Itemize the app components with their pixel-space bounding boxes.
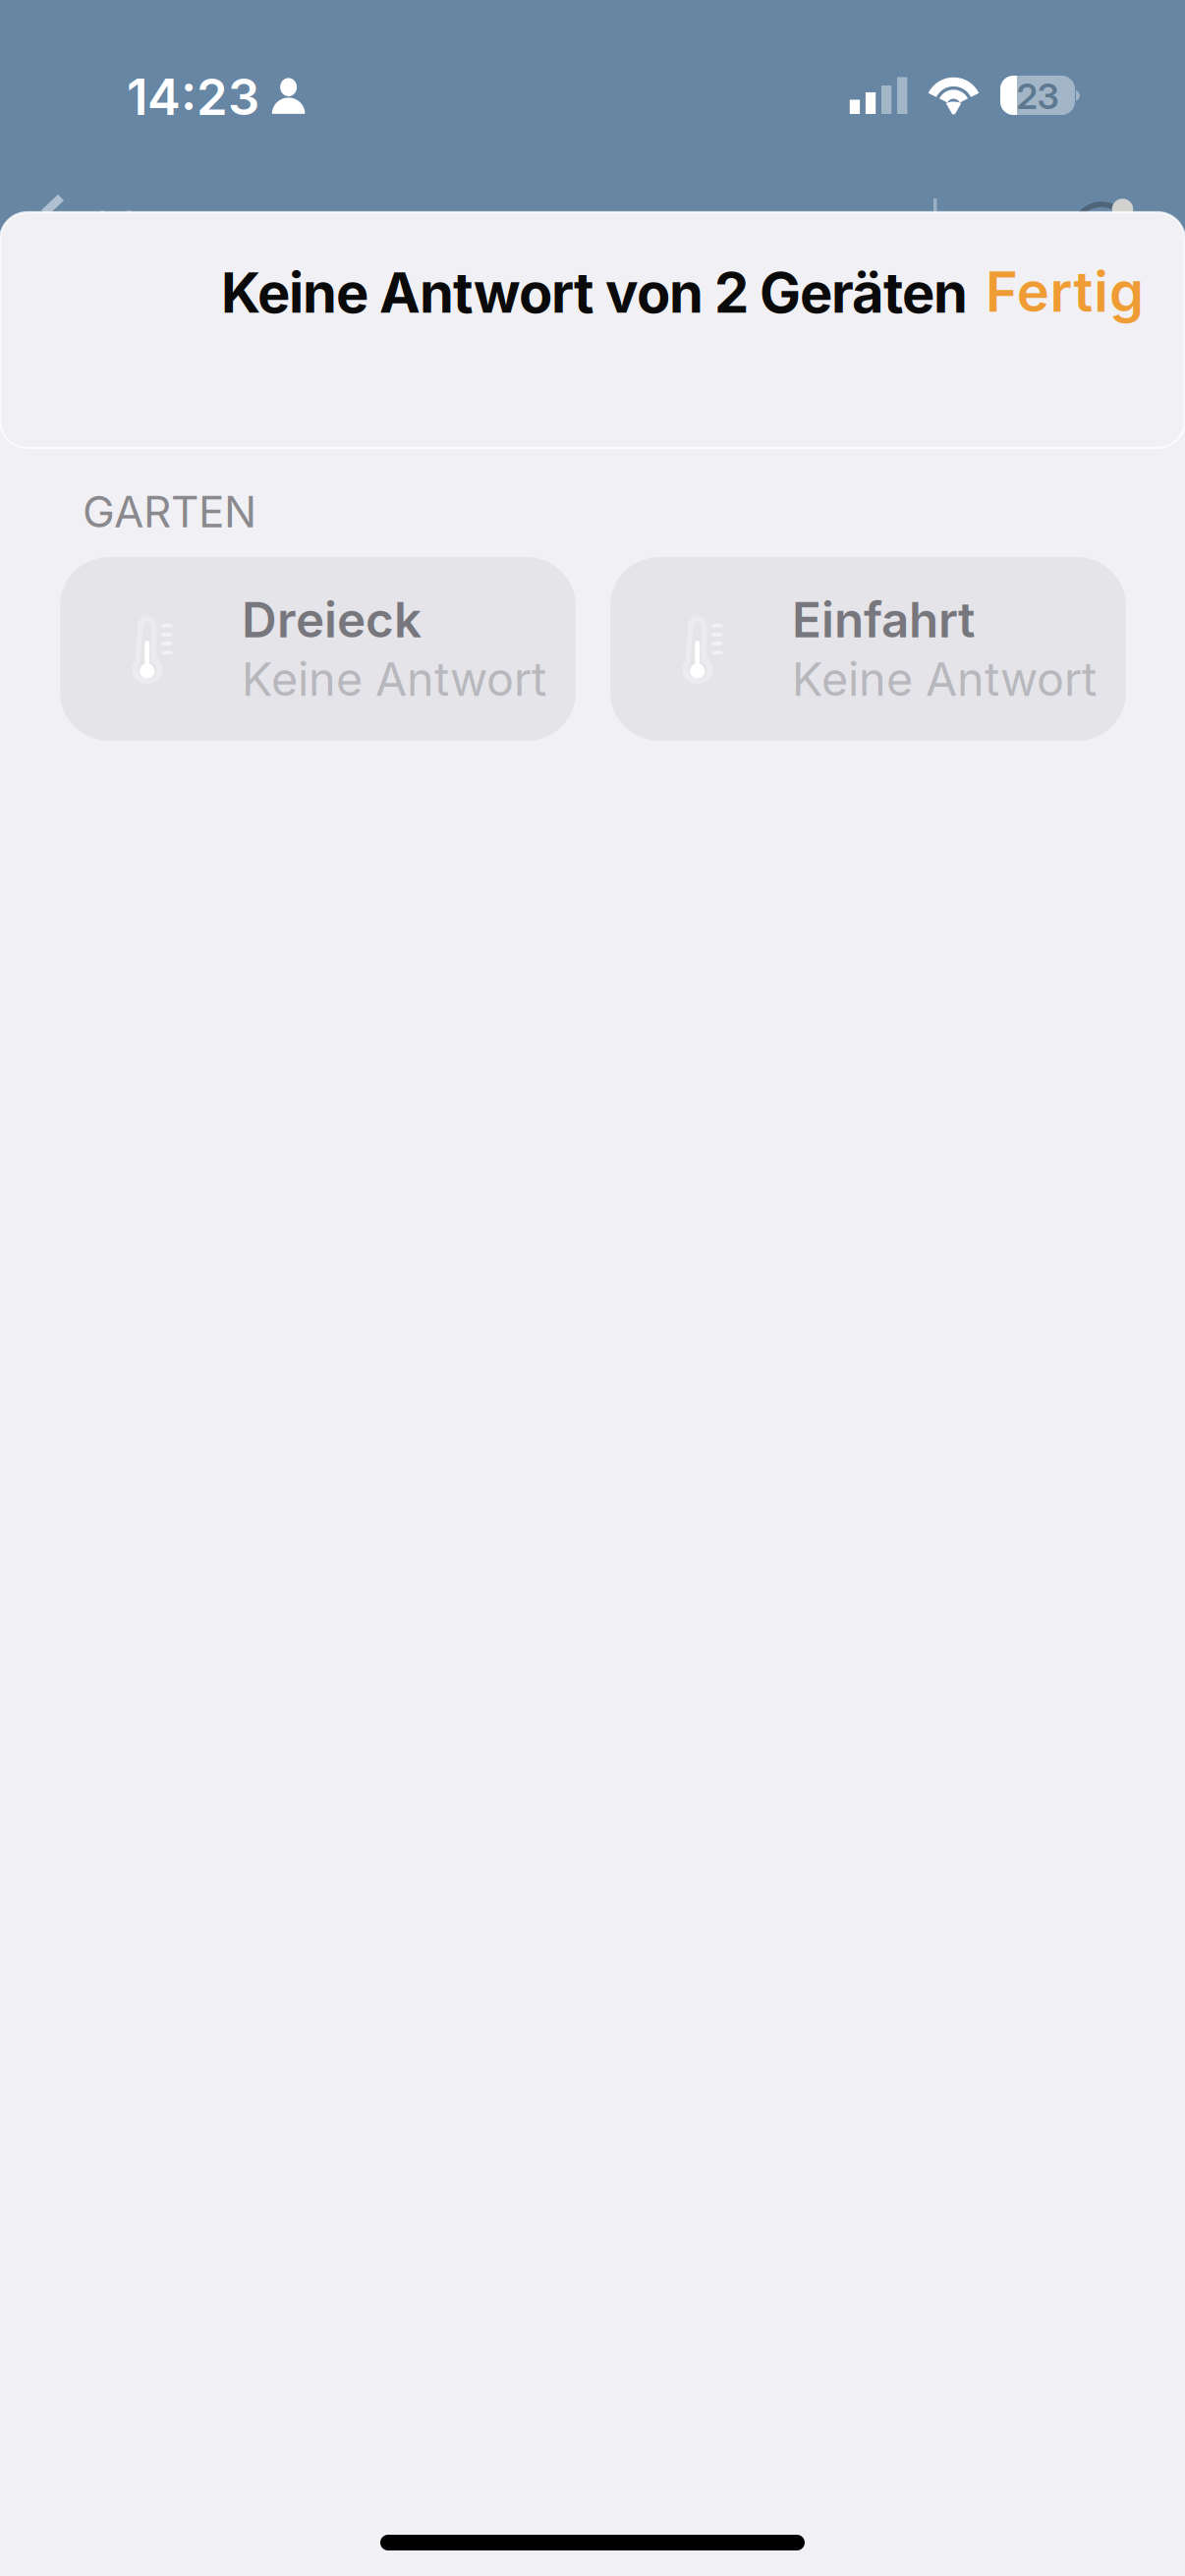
button[interactable]: Dreieck <box>60 557 576 741</box>
staticText: Keine Antwort <box>792 651 1097 707</box>
button[interactable]: Einfahrt <box>610 557 1126 741</box>
staticText: Einfahrt <box>792 590 975 649</box>
button[interactable]: Fertig <box>968 245 1161 339</box>
staticText: Dreieck <box>242 590 422 649</box>
staticText: GARTEN <box>83 485 256 538</box>
staticText: Fertig <box>986 258 1144 325</box>
staticText: 14:23 <box>127 67 259 127</box>
staticText: Keine Antwort <box>242 651 546 707</box>
staticText: Keine Antwort von 2 Geräten <box>221 259 968 326</box>
staticText: 23 <box>1016 75 1059 118</box>
